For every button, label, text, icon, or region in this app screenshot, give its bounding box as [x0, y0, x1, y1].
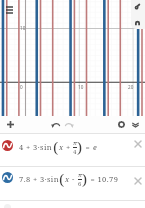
staticText: (: [59, 169, 65, 189]
button[interactable]: Redo: [61, 116, 77, 133]
staticText: e: [93, 142, 98, 152]
staticText: x −: [65, 174, 78, 184]
staticText: = 10.79: [88, 174, 119, 184]
button[interactable]: Snap to grid: [131, 17, 143, 29]
button[interactable]: Settings: [113, 116, 129, 133]
staticText: x +: [59, 142, 73, 152]
staticText: =: [83, 142, 93, 152]
button[interactable]: Tools: [131, 0, 143, 12]
staticText: ): [82, 169, 88, 189]
button[interactable]: Add: [2, 116, 18, 133]
button[interactable]: Delete: [131, 174, 144, 187]
button[interactable]: Undo: [47, 116, 63, 133]
button[interactable]: Menu: [0, 0, 19, 19]
staticText: 10: [20, 25, 26, 31]
staticText: 4 + 3·sin: [19, 142, 53, 152]
button[interactable]: Collapse: [127, 116, 143, 133]
staticText: ): [77, 137, 83, 157]
button[interactable]: 4 + 3·sin: [0, 134, 145, 166]
staticText: 10: [78, 84, 84, 90]
staticText: (: [53, 137, 59, 157]
button[interactable]: 7.8 + 3·sin: [0, 167, 145, 200]
staticText: π: [73, 139, 77, 147]
button[interactable]: Delete: [131, 137, 144, 150]
staticText: 7.8 + 3·sin: [19, 174, 59, 184]
staticText: 0: [20, 84, 23, 90]
staticText: 6: [78, 180, 82, 188]
staticText: π: [78, 171, 82, 179]
staticText: 4: [73, 148, 77, 156]
staticText: 20: [128, 84, 134, 90]
